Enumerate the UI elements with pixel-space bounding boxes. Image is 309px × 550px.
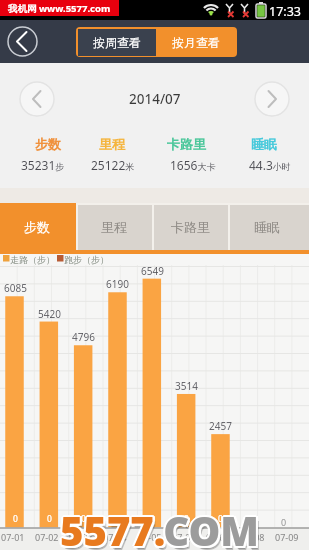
button[interactable]: 按月查看 <box>156 27 236 57</box>
staticText: 卡路里 <box>167 136 206 152</box>
button[interactable] <box>154 205 228 250</box>
staticText: 4796 <box>72 330 95 344</box>
staticText: 07-06 <box>172 531 196 543</box>
staticText: 5577.COM <box>60 503 260 550</box>
staticText: 07-01 <box>1 531 25 543</box>
staticText: 44.3小时 <box>249 157 291 173</box>
staticText: 6085 <box>4 281 27 295</box>
staticText: 5577.COM <box>62 502 262 550</box>
staticText: 按周查看 <box>93 35 141 50</box>
button[interactable] <box>0 203 76 250</box>
staticText: 07-05 <box>138 531 162 543</box>
button[interactable] <box>78 205 152 250</box>
staticText: 5577.COM <box>59 505 259 550</box>
staticText: 5577.COM <box>62 506 262 550</box>
staticText: 3514 <box>175 379 198 393</box>
staticText: 5420 <box>38 307 61 321</box>
staticText: 0 <box>150 513 155 525</box>
staticText: 1656大卡 <box>170 157 216 173</box>
staticText: 5577.COM <box>58 503 258 550</box>
staticText: 0 <box>248 516 254 528</box>
staticText: 6190 <box>106 277 129 291</box>
staticText: 卡路里 <box>171 219 210 235</box>
staticText: 17:33 <box>269 3 301 20</box>
staticText: 07-02 <box>35 531 59 543</box>
button[interactable] <box>254 81 290 117</box>
button[interactable] <box>19 81 55 117</box>
staticText: 睡眠 <box>254 219 280 235</box>
staticText: 0 <box>47 513 52 525</box>
staticText: 走路（步） <box>10 254 55 265</box>
staticText: 2457 <box>209 419 232 433</box>
staticText: 5577.COM <box>59 502 259 550</box>
staticText: 0 <box>281 516 287 528</box>
staticText: 跑步（步） <box>64 254 109 265</box>
staticText: 5577.COM <box>62 505 262 550</box>
staticText: 里程 <box>99 136 125 152</box>
button[interactable] <box>230 205 309 250</box>
staticText: 0 <box>218 513 223 525</box>
staticText: 按月查看 <box>172 35 220 50</box>
button[interactable]: 按周查看 <box>78 29 156 56</box>
staticText: 0 <box>115 513 120 525</box>
staticText: 步数 <box>24 219 50 235</box>
staticText: 我机网 www.5577.com <box>8 2 111 15</box>
staticText: 步数 <box>35 136 61 152</box>
staticText: 5577.COM <box>63 507 263 550</box>
staticText: 睡眠 <box>251 136 277 152</box>
staticText: 里程 <box>101 219 127 235</box>
staticText: 5577.COM <box>60 505 260 550</box>
staticText: 07-03 <box>69 531 93 543</box>
staticText: 25122米 <box>91 157 135 173</box>
staticText: 0 <box>13 513 18 525</box>
staticText: 5577.COM <box>62 503 262 550</box>
button[interactable] <box>6 25 39 58</box>
staticText: 07-07 <box>206 531 230 543</box>
staticText: 2014/07 <box>129 90 181 108</box>
staticText: 35231步 <box>21 157 65 173</box>
staticText: 0 <box>81 513 86 525</box>
staticText: 0 <box>184 513 189 525</box>
staticText: 07-09 <box>275 531 299 543</box>
staticText: 07-08 <box>241 531 265 543</box>
staticText: 6549 <box>141 264 164 278</box>
staticText: 07-04 <box>103 531 127 543</box>
staticText: 5577.COM <box>60 501 260 550</box>
